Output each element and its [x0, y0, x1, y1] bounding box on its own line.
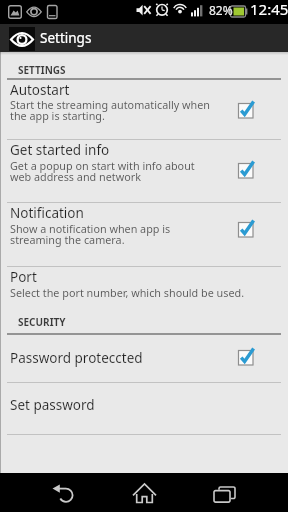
- button[interactable]: [120, 473, 168, 512]
- staticText: 82%: [209, 2, 233, 18]
- staticText: Autostart: [10, 81, 70, 99]
- staticText: Get started info: [10, 141, 110, 159]
- button[interactable]: Notification: [0, 203, 288, 266]
- staticText: Get a popup on start with info about web…: [10, 158, 195, 185]
- staticText: SECURITY: [18, 315, 66, 329]
- button[interactable]: [40, 473, 88, 512]
- button[interactable]: Port: [0, 267, 288, 306]
- staticText: 12:45: [250, 0, 288, 19]
- staticText: Start the streaming automatically when t…: [10, 97, 211, 124]
- staticText: Set password: [10, 396, 95, 414]
- button[interactable]: [200, 473, 248, 512]
- staticText: Settings: [40, 29, 92, 47]
- button[interactable]: Get started info: [0, 140, 288, 202]
- staticText: Show a notification when app is streamin…: [10, 221, 171, 248]
- button[interactable]: Password proteccted: [0, 335, 288, 382]
- button[interactable]: Set password: [0, 383, 288, 434]
- staticText: Password proteccted: [10, 349, 143, 367]
- staticText: SETTINGS: [18, 63, 66, 77]
- button[interactable]: Autostart: [0, 80, 288, 139]
- staticText: Port: [10, 268, 37, 286]
- staticText: Notification: [10, 204, 84, 222]
- staticText: Select the port number, which should be …: [10, 285, 245, 300]
